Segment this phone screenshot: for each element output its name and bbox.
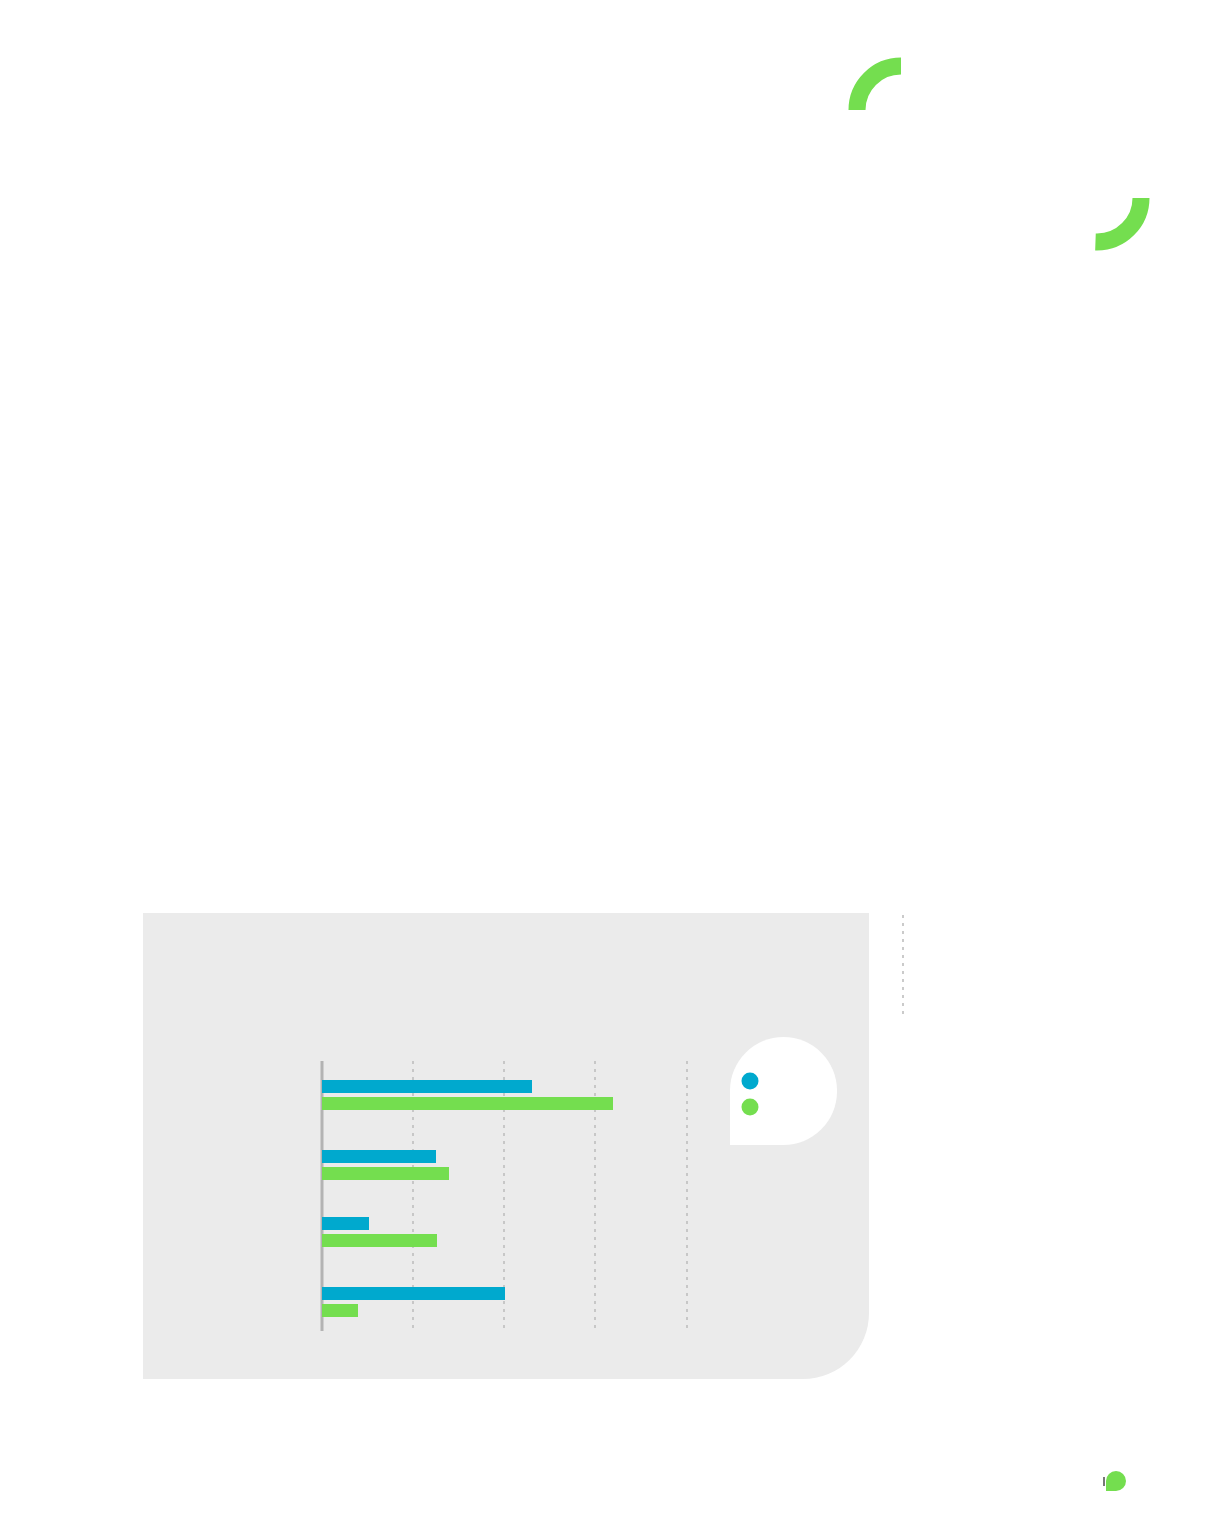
- button[interactable]: Grouped bar chart slide: [0, 0, 1225, 1538]
